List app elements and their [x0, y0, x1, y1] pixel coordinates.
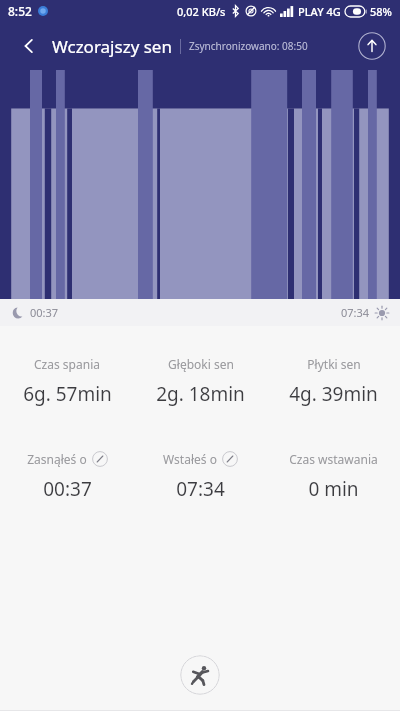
staticText: 58%	[370, 4, 392, 19]
staticText: 4g. 39min	[289, 381, 378, 407]
button[interactable]: Back	[12, 29, 46, 63]
staticText: 07:34	[341, 305, 370, 320]
button[interactable]: Zasnąłeś o	[0, 449, 134, 504]
staticText: 0,02 KB/s	[177, 4, 226, 19]
button[interactable]: Share	[356, 30, 388, 62]
staticText: Czas spania	[34, 356, 100, 372]
button[interactable]: Głęboki sen	[134, 354, 267, 409]
button[interactable]: Czas wstawania	[267, 449, 400, 504]
staticText: Zasnąłeś o	[27, 451, 87, 467]
button[interactable]: Start activity	[180, 655, 220, 695]
button[interactable]: Wstałeś o	[134, 449, 267, 504]
staticText: Wstałeś o	[163, 451, 217, 467]
staticText: 00:37	[30, 305, 59, 320]
staticText: 0 min	[308, 476, 359, 502]
staticText: 00:37	[43, 476, 92, 502]
staticText: 6g. 57min	[23, 381, 112, 407]
staticText: Głęboki sen	[168, 356, 234, 372]
staticText: Wczorajszy sen	[52, 35, 172, 58]
staticText: Czas wstawania	[289, 451, 378, 467]
staticText: 2g. 18min	[156, 381, 245, 407]
button[interactable]: Czas spania	[0, 354, 134, 409]
staticText: Płytki sen	[307, 356, 361, 372]
staticText: 07:34	[176, 476, 225, 502]
staticText: PLAY 4G	[298, 4, 341, 19]
staticText: 8:52	[8, 3, 32, 19]
staticText: Zsynchronizowano: 08:50	[189, 39, 308, 53]
button[interactable]: Płytki sen	[267, 354, 400, 409]
